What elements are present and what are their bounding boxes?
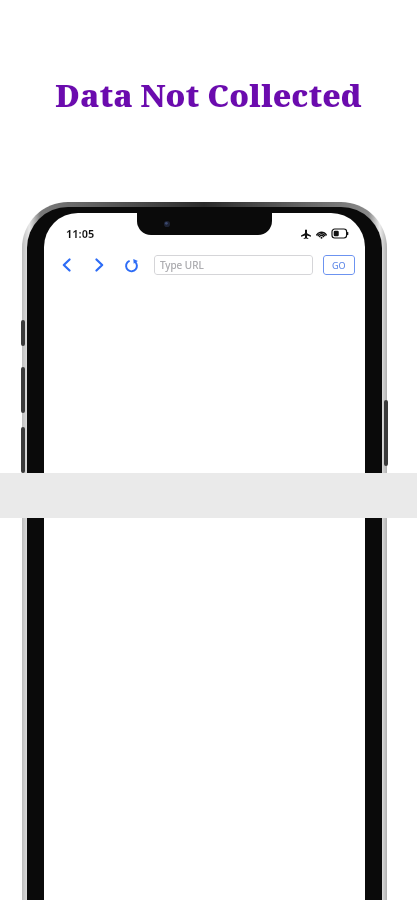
button[interactable]: Forward — [86, 252, 112, 278]
staticText: Data Not Collected — [55, 74, 362, 116]
staticText: Type URL — [160, 258, 204, 272]
button[interactable]: Back — [54, 252, 80, 278]
button[interactable]: Type URL — [154, 255, 313, 275]
button[interactable]: GO — [323, 255, 355, 275]
button[interactable]: Reload — [118, 252, 144, 278]
staticText: 11:05 — [66, 226, 95, 241]
staticText: GO — [332, 259, 346, 271]
